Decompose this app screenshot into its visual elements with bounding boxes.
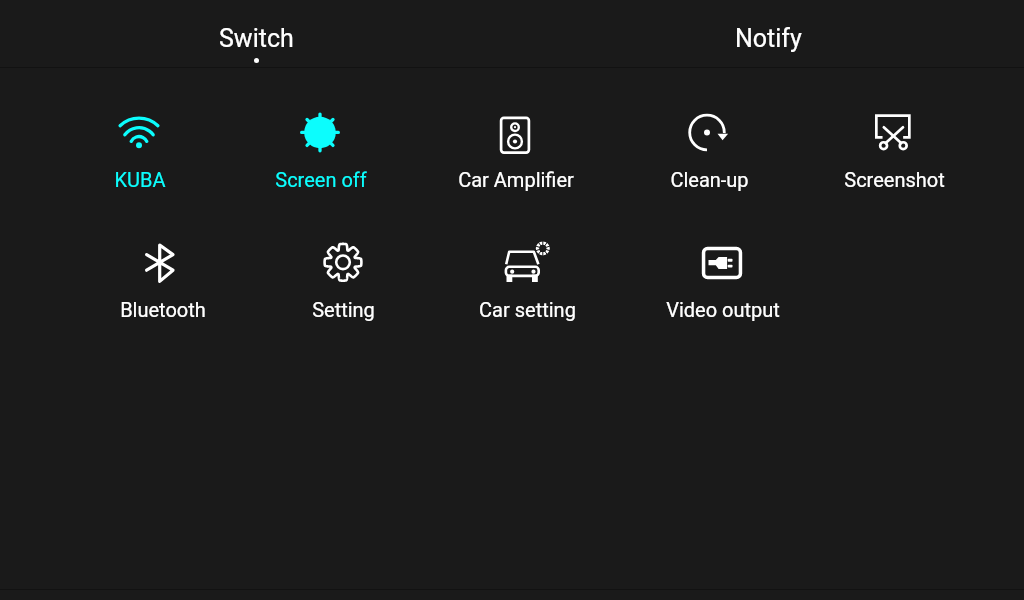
button[interactable]: Wi-Fi: [65, 103, 215, 195]
other: Clean-up: [685, 109, 731, 155]
staticText: Switch: [219, 24, 294, 53]
button[interactable]: Setting: [268, 234, 418, 326]
other: Car Amplifier: [492, 109, 538, 155]
other: Video output: [699, 240, 745, 286]
other: Car setting: [504, 240, 550, 286]
other: Screen off: [297, 109, 343, 155]
button[interactable]: Screen off: [246, 103, 396, 195]
button[interactable]: Screenshot: [819, 103, 969, 195]
staticText: Screen off: [275, 168, 367, 191]
button[interactable]: Bluetooth: [88, 234, 238, 326]
staticText: Video output: [666, 298, 780, 321]
button[interactable]: Clean-up: [634, 103, 784, 195]
other: Bluetooth: [137, 240, 183, 286]
button[interactable]: Car Amplifier: [441, 103, 591, 195]
button[interactable]: Notify: [512, 0, 1024, 67]
other: Screenshot: [870, 109, 916, 155]
staticText: Screenshot: [844, 168, 945, 191]
staticText: Setting: [312, 298, 375, 321]
staticText: Car setting: [479, 298, 576, 321]
other: Setting: [320, 240, 366, 286]
button[interactable]: Car setting: [452, 234, 602, 326]
staticText: Car Amplifier: [458, 168, 574, 191]
staticText: Notify: [735, 24, 802, 53]
staticText: Clean-up: [670, 168, 749, 191]
button[interactable]: Switch: [0, 0, 512, 67]
staticText: Bluetooth: [120, 298, 206, 321]
button[interactable]: Video output: [648, 234, 798, 326]
staticText: KUBA: [114, 168, 166, 191]
other: Wi-Fi: [116, 109, 162, 155]
